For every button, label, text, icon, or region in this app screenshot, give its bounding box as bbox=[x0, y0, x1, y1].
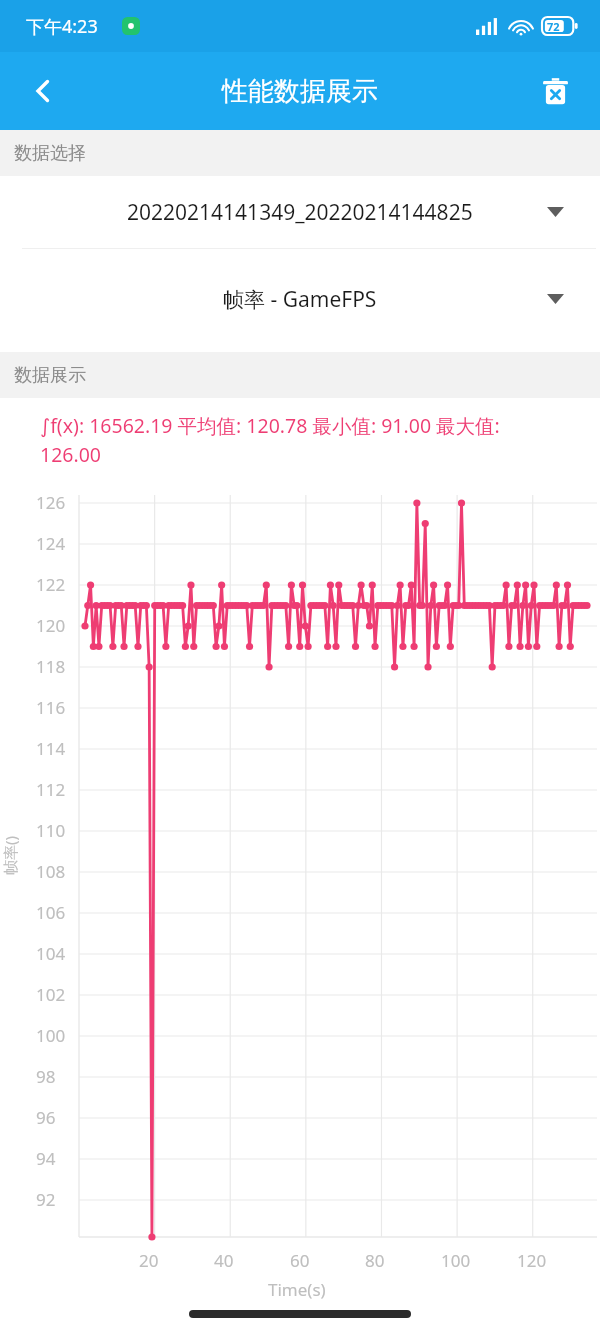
button[interactable]: 帧率 - GameFPS bbox=[0, 263, 600, 335]
staticText: 120 bbox=[36, 614, 66, 637]
staticText: 98 bbox=[36, 1065, 56, 1088]
staticText: 112 bbox=[36, 778, 66, 801]
staticText: 下午4:23 bbox=[26, 14, 98, 39]
staticText: Time(s) bbox=[268, 1278, 326, 1301]
staticText: 104 bbox=[36, 942, 66, 965]
staticText: 116 bbox=[36, 696, 66, 719]
button[interactable]: Delete bbox=[528, 64, 582, 118]
staticText: 40 bbox=[214, 1249, 234, 1272]
staticText: 120 bbox=[517, 1249, 547, 1272]
staticText: 20 bbox=[139, 1249, 159, 1272]
staticText: 数据展示 bbox=[14, 364, 86, 387]
staticText: 92 bbox=[36, 1188, 56, 1211]
button[interactable]: 20220214141349_20220214144825 bbox=[0, 176, 600, 248]
staticText: 100 bbox=[441, 1249, 471, 1272]
button[interactable]: Back bbox=[14, 62, 72, 120]
staticText: 106 bbox=[36, 901, 66, 924]
staticText: 108 bbox=[36, 860, 66, 883]
staticText: 100 bbox=[36, 1024, 66, 1047]
staticText: 94 bbox=[36, 1147, 56, 1170]
staticText: 帧率 - GameFPS bbox=[223, 285, 377, 314]
staticText: 80 bbox=[365, 1249, 385, 1272]
staticText: 118 bbox=[36, 655, 66, 678]
staticText: ∫f(x): 16562.19 平均值: 120.78 最小值: 91.00 最… bbox=[40, 412, 588, 468]
staticText: 60 bbox=[290, 1249, 310, 1272]
staticText: 102 bbox=[36, 983, 66, 1006]
staticText: 72 bbox=[547, 19, 560, 34]
staticText: 124 bbox=[36, 532, 66, 555]
staticText: 110 bbox=[36, 819, 66, 842]
staticText: 114 bbox=[36, 737, 66, 760]
staticText: 126 bbox=[36, 491, 66, 514]
staticText: 性能数据展示 bbox=[222, 75, 378, 108]
staticText: 帧率() bbox=[0, 835, 20, 875]
staticText: 122 bbox=[36, 573, 66, 596]
staticText: 数据选择 bbox=[14, 142, 86, 165]
staticText: 20220214141349_20220214144825 bbox=[127, 198, 473, 227]
staticText: 96 bbox=[36, 1106, 56, 1129]
